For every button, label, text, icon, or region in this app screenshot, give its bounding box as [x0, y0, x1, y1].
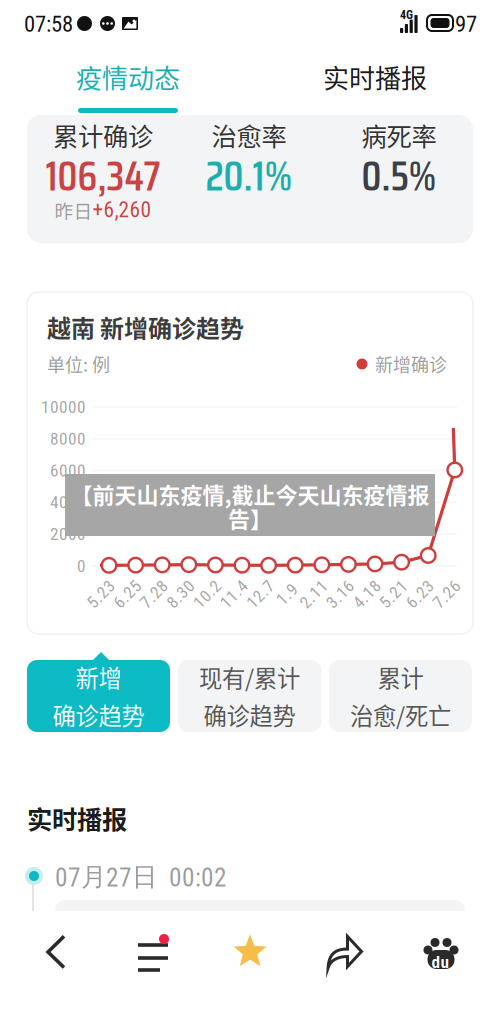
button[interactable]: 累计 [329, 660, 472, 732]
staticText: 4G [400, 8, 413, 22]
staticText: 单位: 例 [47, 351, 110, 377]
staticText: 确诊趋势 [52, 698, 144, 732]
button[interactable]: Back [0, 911, 500, 1012]
button[interactable]: 新增 [27, 660, 170, 732]
staticText: 07:58 [24, 11, 73, 37]
staticText: 累计 [377, 660, 423, 694]
staticText: 20.1% [205, 143, 292, 209]
staticText: 累计确诊 [53, 117, 153, 153]
button[interactable]: Share [0, 911, 500, 1012]
staticText: 3.16 [324, 584, 356, 604]
staticText: 新增确诊 [375, 351, 447, 377]
staticText: 确诊趋势 [203, 698, 295, 732]
staticText: 4000 [50, 492, 86, 512]
staticText: 5.21 [378, 584, 410, 604]
staticText: 越南 新增确诊趋势 [47, 310, 244, 344]
staticText: 现有/累计 [199, 660, 300, 694]
staticText: 11.4 [218, 584, 250, 604]
staticText: 实时播报 [27, 800, 127, 836]
staticText: 0 [77, 556, 86, 576]
staticText: 8000 [50, 429, 86, 449]
staticText: +6,260 [92, 197, 151, 222]
staticText: 治愈率 [211, 117, 286, 153]
staticText: 6000 [50, 460, 86, 481]
staticText: 0.5% [361, 143, 436, 209]
staticText: 疫情动态 [76, 58, 180, 96]
staticText: 新增 [75, 660, 121, 694]
button[interactable]: 疫情动态 [3, 46, 253, 115]
button[interactable]: Favorite [0, 911, 500, 1012]
button[interactable]: Baidu [0, 911, 500, 1012]
button[interactable]: Menu [0, 911, 500, 1012]
staticText: 2000 [50, 524, 86, 544]
staticText: 106,347 [45, 143, 160, 209]
staticText: 12.7 [245, 584, 277, 604]
staticText: 6.23 [404, 584, 436, 604]
staticText: 1.9 [276, 584, 299, 604]
staticText: 昨日 [54, 196, 92, 223]
staticText: 10000 [41, 397, 86, 417]
button[interactable]: 实时播报 [253, 46, 500, 115]
staticText: 7.28 [138, 584, 170, 604]
staticText: 2.11 [298, 584, 330, 604]
staticText: 4.18 [351, 584, 383, 604]
button[interactable]: 现有/累计 [178, 660, 321, 732]
staticText: 病死率 [361, 117, 436, 153]
staticText: 实时播报 [323, 58, 427, 96]
staticText: 告】 [228, 502, 272, 534]
staticText: 5.23 [85, 584, 117, 604]
staticText: 7.26 [431, 584, 463, 604]
staticText: 6.25 [112, 584, 144, 604]
staticText: du [431, 952, 449, 972]
staticText: 8.30 [165, 584, 197, 604]
staticText: 07月27日 00:02 [55, 861, 227, 893]
staticText: 治愈/死亡 [350, 698, 451, 732]
staticText: 【前天山东疫情,截止今天山东疫情报 [70, 478, 429, 510]
staticText: 10.2 [191, 584, 223, 604]
staticText: 97 [455, 11, 477, 37]
